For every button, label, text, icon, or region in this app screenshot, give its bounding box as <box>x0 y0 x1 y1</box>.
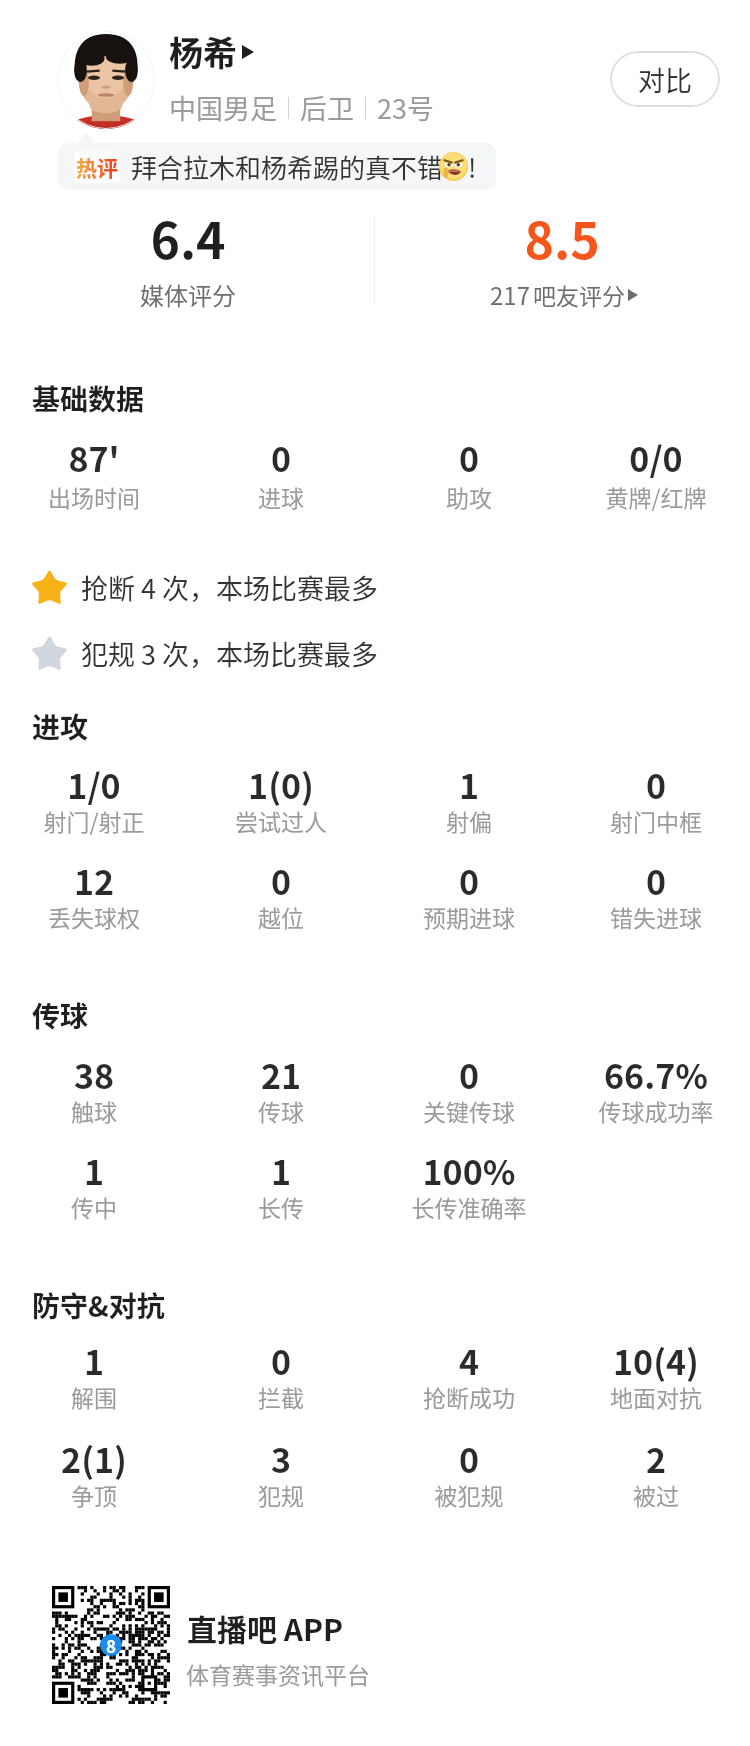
staticText: 触球 <box>0 1094 204 1127</box>
staticText: 出场时间 <box>0 480 204 513</box>
staticText: 12 <box>0 856 204 905</box>
staticText: 87' <box>0 433 204 482</box>
staticText: 0 <box>359 856 579 905</box>
staticText: 0/0 <box>546 433 750 482</box>
staticText: 尝试过人 <box>171 804 391 837</box>
staticText: 1 <box>0 1146 204 1195</box>
staticText: 射门/射正 <box>0 804 204 837</box>
staticText: 217 <box>490 277 530 312</box>
staticText: 21 <box>171 1050 391 1099</box>
staticText: 拦截 <box>171 1380 391 1413</box>
staticText: 错失进球 <box>546 900 750 933</box>
staticText: 0 <box>546 856 750 905</box>
staticText: 中国男足 <box>169 88 277 127</box>
staticText: 助攻 <box>359 480 579 513</box>
staticText: 犯规 <box>171 1478 391 1511</box>
staticText: 进攻 <box>32 706 89 747</box>
button[interactable]: Player avatar <box>57 31 155 129</box>
staticText: 2(1) <box>0 1434 204 1483</box>
staticText: 1 <box>359 760 579 809</box>
staticText: 基础数据 <box>32 378 145 419</box>
staticText: 0 <box>171 1336 391 1385</box>
staticText: 0 <box>359 1050 579 1099</box>
staticText: 媒体评分 <box>88 277 288 312</box>
staticText: 传球成功率 <box>546 1094 750 1127</box>
staticText: 热评 <box>76 152 118 182</box>
staticText: 抢断 4 次，本场比赛最多 <box>81 568 379 607</box>
staticText: 黄牌/红牌 <box>546 480 750 513</box>
staticText: 地面对抗 <box>546 1380 750 1413</box>
staticText: 防守&对抗 <box>32 1285 165 1326</box>
staticText: 后卫 <box>300 88 354 127</box>
staticText: 0 <box>359 433 579 482</box>
staticText: 进球 <box>171 480 391 513</box>
staticText: 射门中框 <box>546 804 750 837</box>
staticText: 0 <box>171 856 391 905</box>
button[interactable]: 犯规 3 次，本场比赛最多 <box>30 634 379 673</box>
staticText: 抢断成功 <box>359 1380 579 1413</box>
button[interactable]: 热评 <box>58 143 496 190</box>
staticText: 1/0 <box>0 760 204 809</box>
staticText: 1 <box>171 1146 391 1195</box>
staticText: 解围 <box>0 1380 204 1413</box>
staticText: 0 <box>359 1434 579 1483</box>
button[interactable]: QR code to download the app <box>52 1586 170 1704</box>
staticText: 0 <box>546 760 750 809</box>
staticText: 8.5 <box>462 201 662 273</box>
staticText: 38 <box>0 1050 204 1099</box>
staticText: 拜合拉木和杨希踢的真不错 <box>131 148 444 186</box>
staticText: 对比 <box>638 60 692 99</box>
staticText: 传球 <box>32 995 89 1036</box>
staticText: 2 <box>546 1434 750 1483</box>
button[interactable]: 对比 <box>610 51 720 107</box>
staticText: 4 <box>359 1336 579 1385</box>
staticText: 100% <box>359 1146 579 1195</box>
button[interactable]: 抢断 4 次，本场比赛最多 <box>30 568 379 607</box>
staticText: 犯规 3 次，本场比赛最多 <box>81 634 379 673</box>
staticText: 被过 <box>546 1478 750 1511</box>
staticText: 23号 <box>377 88 434 127</box>
staticText: 杨希 <box>169 27 237 76</box>
staticText: 争顶 <box>0 1478 204 1511</box>
staticText: 体育赛事资讯平台 <box>186 1657 370 1690</box>
staticText: 1 <box>0 1336 204 1385</box>
staticText: 6.4 <box>88 201 288 273</box>
staticText: 0 <box>171 433 391 482</box>
staticText: 关键传球 <box>359 1094 579 1127</box>
staticText: 3 <box>171 1434 391 1483</box>
staticText: 传中 <box>0 1190 204 1223</box>
staticText: 10(4) <box>546 1336 750 1385</box>
staticText: ! <box>468 148 477 186</box>
staticText: 丢失球权 <box>0 900 204 933</box>
staticText: 被犯规 <box>359 1478 579 1511</box>
staticText: 直播吧 APP <box>187 1606 344 1649</box>
staticText: 长传准确率 <box>359 1190 579 1223</box>
staticText: 长传 <box>171 1190 391 1223</box>
staticText: 1(0) <box>171 760 391 809</box>
staticText: 射偏 <box>359 804 579 837</box>
staticText: 66.7% <box>546 1050 750 1099</box>
button[interactable]: 217 fan ratings, open details <box>490 277 638 312</box>
staticText: 吧友评分 <box>533 278 625 311</box>
staticText: 8 <box>106 1633 117 1658</box>
staticText: 预期进球 <box>359 900 579 933</box>
staticText: 传球 <box>171 1094 391 1127</box>
staticText: 越位 <box>171 900 391 933</box>
button[interactable]: 杨希, open player profile <box>169 27 254 76</box>
